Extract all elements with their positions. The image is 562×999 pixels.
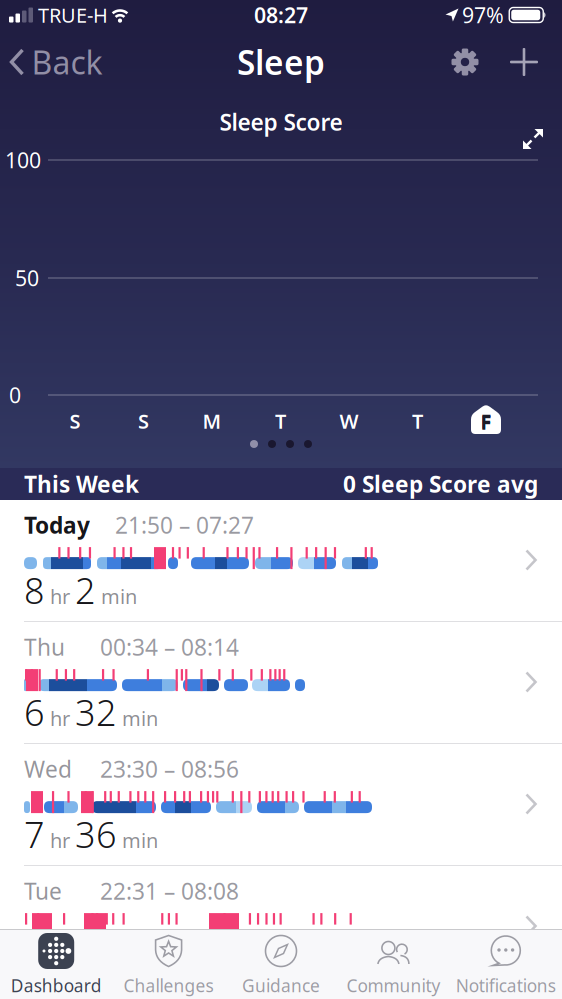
staticText: 0	[9, 381, 21, 409]
staticText: 7	[24, 810, 45, 858]
staticText: Thu	[24, 632, 65, 662]
staticText: Back	[31, 41, 102, 83]
staticText: hr	[50, 583, 70, 609]
staticText: Community	[346, 974, 440, 997]
staticText: 08:27	[254, 1, 308, 29]
staticText: S	[138, 408, 149, 434]
staticText: hr	[50, 949, 70, 975]
staticText: Sleep Score	[219, 107, 342, 137]
staticText: F	[480, 409, 491, 435]
staticText: T	[275, 408, 286, 434]
button[interactable]: Tue	[0, 866, 562, 988]
staticText: Notifications	[456, 974, 556, 997]
staticText: 2	[75, 566, 96, 614]
staticText: 97%	[462, 1, 504, 29]
staticText: S	[69, 408, 80, 434]
staticText: Wed	[24, 754, 72, 784]
staticText: 100	[5, 146, 41, 174]
staticText: F	[480, 408, 491, 434]
button[interactable]: Community	[337, 931, 450, 997]
staticText: Challenges	[124, 974, 214, 997]
staticText: 8	[24, 566, 45, 614]
staticText: Dashboard	[11, 974, 102, 997]
staticText: TRUE-H	[38, 2, 108, 28]
staticText: 6	[24, 688, 45, 736]
staticText: Guidance	[242, 974, 320, 997]
staticText: min	[122, 827, 158, 853]
staticText: 21:50 – 07:27	[115, 510, 254, 540]
button[interactable]: Notifications	[450, 931, 562, 997]
button[interactable]: Add	[504, 42, 544, 82]
staticText: Today	[24, 510, 90, 540]
button[interactable]: Wed	[0, 744, 562, 866]
button[interactable]: Guidance	[225, 931, 337, 997]
staticText: 0 Sleep Score avg	[343, 469, 538, 499]
button[interactable]: Expand chart	[522, 128, 544, 150]
button[interactable]: Settings	[445, 42, 485, 82]
staticText: min	[101, 583, 137, 609]
button[interactable]: Challenges	[112, 931, 225, 997]
button[interactable]: Today	[0, 500, 562, 622]
staticText: 50	[15, 264, 39, 292]
staticText: 12	[75, 932, 117, 980]
button[interactable]: Dashboard	[0, 931, 112, 997]
button[interactable]: Back	[9, 40, 102, 84]
staticText: 00:34 – 08:14	[100, 632, 239, 662]
staticText: min	[122, 949, 158, 975]
staticText: Sleep	[237, 40, 325, 84]
button[interactable]: Thu	[0, 622, 562, 744]
staticText: 22:31 – 08:08	[100, 876, 239, 906]
staticText: 7	[24, 932, 45, 980]
staticText: hr	[50, 827, 70, 853]
staticText: hr	[50, 705, 70, 731]
staticText: 23:30 – 08:56	[100, 754, 239, 784]
staticText: T	[412, 408, 423, 434]
staticText: min	[122, 705, 158, 731]
staticText: 32	[75, 688, 117, 736]
staticText: 36	[75, 810, 117, 858]
staticText: Tue	[24, 876, 62, 906]
staticText: M	[202, 408, 221, 434]
staticText: W	[339, 408, 358, 434]
staticText: This Week	[24, 469, 139, 499]
